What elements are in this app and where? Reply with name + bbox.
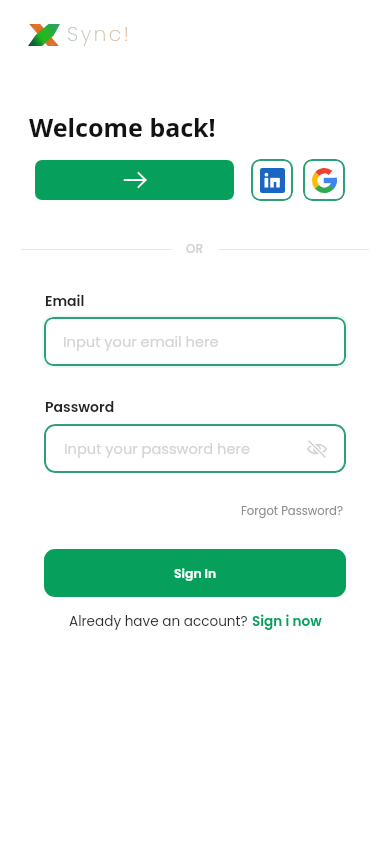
button[interactable]: Input your password here	[44, 424, 346, 473]
button[interactable]: Show password	[302, 434, 332, 464]
staticText: Sync!	[67, 20, 132, 48]
staticText: Password	[45, 397, 115, 417]
staticText: Already have an account?	[69, 612, 252, 631]
button[interactable]: Continue	[35, 160, 234, 200]
button[interactable]: Sign i now	[252, 612, 322, 631]
button[interactable]: Input your email here	[44, 317, 346, 366]
button[interactable]: Forgot Password?	[241, 503, 343, 519]
staticText: Sign In	[174, 565, 217, 582]
button[interactable]: Sign in with Google	[303, 159, 345, 201]
staticText: OR	[186, 240, 203, 257]
staticText: Input your password here	[64, 439, 250, 459]
staticText: Input your email here	[63, 332, 219, 352]
staticText: Email	[45, 291, 85, 311]
button[interactable]: Sign in with LinkedIn	[251, 159, 293, 201]
button[interactable]: Sign In	[44, 549, 346, 597]
staticText: Welcome back!	[29, 110, 216, 144]
